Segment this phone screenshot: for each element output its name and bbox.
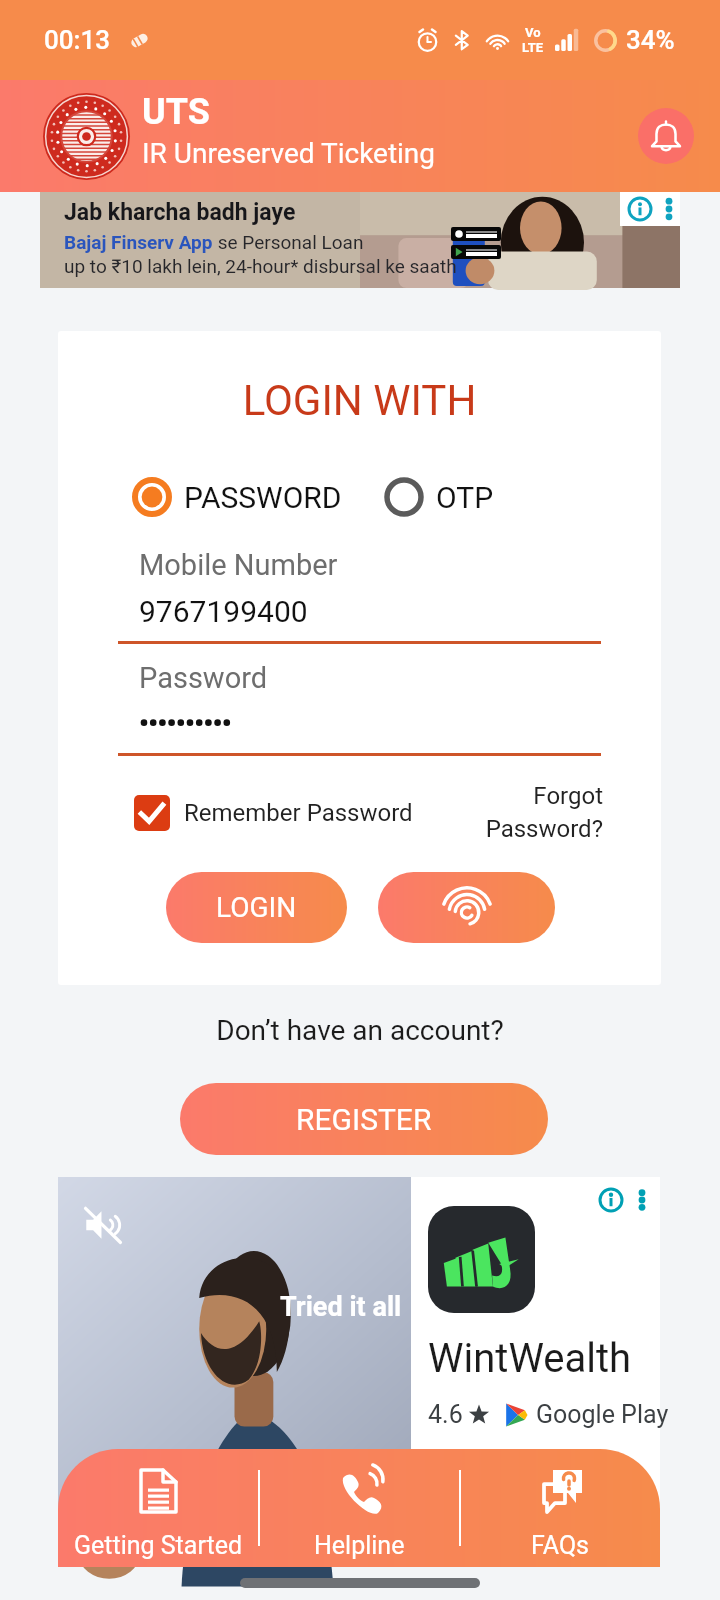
button[interactable]: PASSWORD — [132, 477, 342, 517]
staticText: Jab kharcha badh jaye — [64, 199, 296, 226]
staticText: 4.6 — [428, 1400, 463, 1429]
button[interactable]: LOGIN — [166, 872, 347, 943]
staticText: Vo — [525, 25, 541, 40]
button[interactable]: Helpline — [260, 1449, 459, 1567]
button[interactable]: Remember Password — [134, 795, 413, 831]
button[interactable]: Getting Started — [58, 1449, 258, 1567]
staticText: IR Unreserved Ticketing — [142, 137, 436, 170]
staticText: WintWealth — [428, 1335, 632, 1382]
staticText: 9767199400 — [139, 594, 308, 629]
staticText: FAQs — [531, 1531, 590, 1560]
staticText: Helpline — [314, 1531, 405, 1560]
staticText: Google Play — [536, 1400, 669, 1429]
staticText: Tried it all — [280, 1291, 402, 1323]
staticText: Mobile Number — [139, 548, 338, 582]
staticText: UTS — [142, 91, 210, 133]
staticText: 34% — [626, 25, 675, 55]
button[interactable]: FAQs — [461, 1449, 660, 1567]
button[interactable]: OTP — [384, 477, 494, 517]
staticText: Getting Started — [74, 1531, 243, 1560]
staticText: up to ₹10 lakh lein, 24-hour* disbursal … — [64, 255, 457, 277]
staticText: Don’t have an account? — [0, 1014, 720, 1047]
button[interactable]: Forgot Password? — [485, 782, 603, 843]
button[interactable]: Fingerprint login — [378, 872, 555, 943]
staticText: LOGIN WITH — [58, 376, 661, 425]
staticText: Bajaj Finserv App — [64, 231, 213, 253]
staticText: 00:13 — [44, 25, 111, 55]
staticText: LTE — [522, 40, 544, 55]
staticText: se Personal Loan — [213, 231, 364, 253]
button[interactable]: Notifications — [638, 108, 694, 164]
staticText: REGISTER — [296, 1102, 432, 1137]
staticText: PASSWORD — [184, 480, 342, 515]
button[interactable]: REGISTER — [180, 1083, 548, 1155]
staticText: Remember Password — [184, 799, 413, 827]
staticText: LOGIN — [216, 891, 297, 924]
staticText: OTP — [436, 480, 494, 515]
staticText: Password — [139, 661, 268, 695]
